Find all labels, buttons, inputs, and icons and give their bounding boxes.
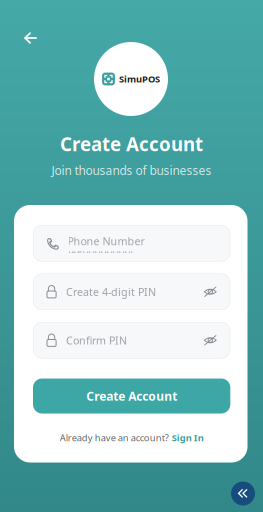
button[interactable]: Show confirm PIN — [204, 335, 217, 345]
staticText: Join thousands of businesses — [51, 162, 211, 178]
staticText: Sign In — [172, 431, 204, 444]
button[interactable]: Sign In — [172, 431, 204, 444]
button[interactable]: Back — [16, 24, 44, 52]
button[interactable]: Show PIN — [204, 287, 217, 297]
staticText: Create 4-digit PIN — [66, 285, 156, 299]
button[interactable]: Create Account — [33, 378, 230, 413]
button[interactable]: Previous — [231, 481, 255, 505]
staticText: Already have an account? — [60, 431, 169, 444]
staticText: Phone Number (05XXXXXXXX) — [67, 234, 144, 262]
staticText: Create Account — [86, 388, 177, 404]
staticText: Confirm PIN — [66, 333, 127, 347]
staticText: Create Account — [60, 131, 203, 156]
staticText: SimuPOS — [119, 73, 160, 85]
